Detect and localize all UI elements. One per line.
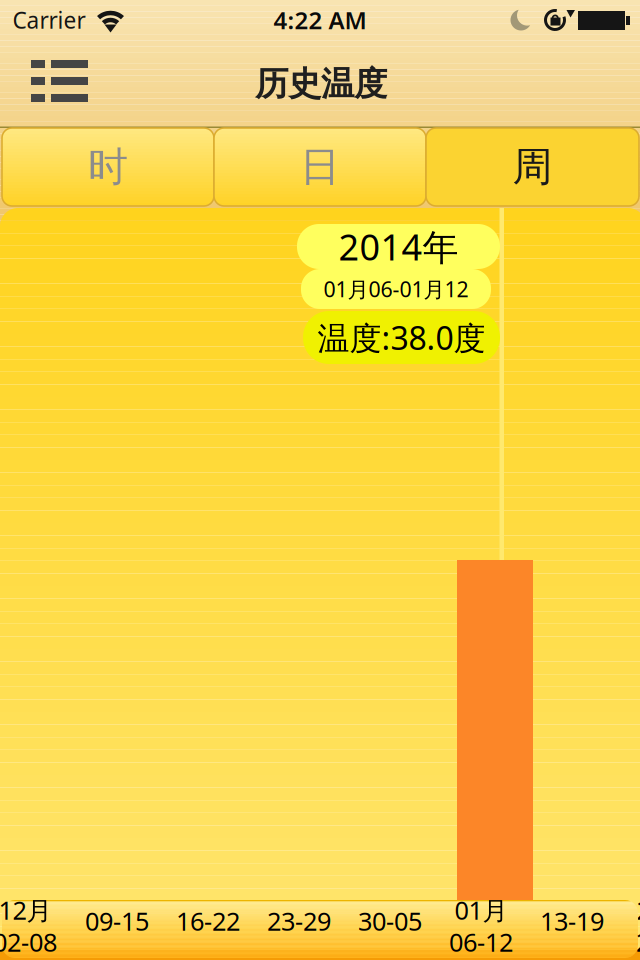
staticText: 2月 (636, 893, 640, 927)
staticText: 4:22 AM (273, 4, 366, 36)
staticText: 时 (88, 142, 128, 191)
staticText: 06-12 (449, 925, 513, 959)
staticText: 2014年 (338, 223, 458, 270)
staticText: 日 (300, 142, 340, 191)
staticText: 02-08 (0, 925, 57, 959)
staticText: 12月 (0, 893, 51, 927)
staticText: 历史温度 (255, 63, 387, 104)
staticText: 09-15 (85, 904, 149, 938)
staticText: 23-29 (267, 904, 331, 938)
staticText: Carrier (12, 5, 85, 35)
button[interactable]: Menu (31, 60, 88, 102)
button[interactable]: 周 (426, 128, 639, 206)
staticText: 16-22 (176, 904, 240, 938)
button[interactable]: 时 (2, 128, 214, 206)
staticText: 周 (512, 142, 552, 191)
staticText: 13-19 (540, 904, 604, 938)
staticText: 温度:38.0度 (317, 316, 485, 359)
staticText: 30-05 (358, 904, 422, 938)
button[interactable]: 日 (214, 128, 426, 206)
staticText: 01月 (454, 893, 507, 927)
staticText: 20-26 (636, 925, 640, 959)
staticText: 01月06-01月12 (323, 275, 468, 303)
